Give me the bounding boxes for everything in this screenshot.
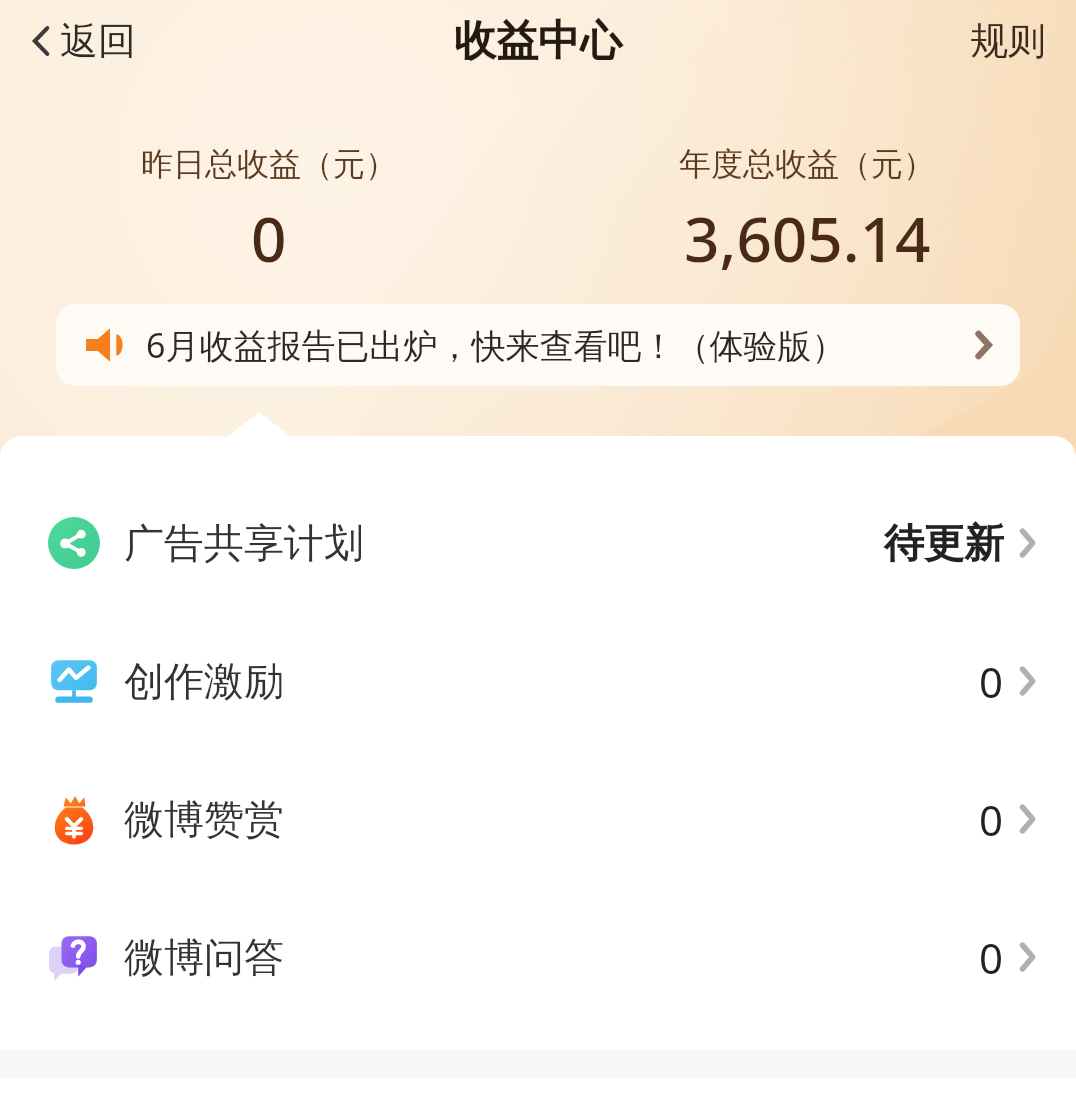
staticText: 3,605.14 xyxy=(684,196,931,280)
staticText: 0 xyxy=(979,653,1004,710)
button[interactable]: 6月收益报告已出炉，快来查看吧！（体验版） xyxy=(56,304,1020,386)
button[interactable]: 广告共享计划 xyxy=(0,474,1076,612)
staticText: 广告共享计划 xyxy=(124,518,364,568)
staticText: 6月收益报告已出炉，快来查看吧！（体验版） xyxy=(146,322,846,368)
staticText: 0 xyxy=(979,929,1004,986)
button[interactable]: 微博赞赏 xyxy=(0,750,1076,888)
staticText: 微博问答 xyxy=(124,932,284,982)
staticText: 规则 xyxy=(970,17,1046,65)
staticText: 微博赞赏 xyxy=(124,794,284,844)
staticText: 待更新 xyxy=(884,518,1004,568)
button[interactable]: 返回 xyxy=(22,11,144,71)
staticText: 昨日总收益（元） xyxy=(141,144,397,184)
staticText: 年度总收益（元） xyxy=(679,144,935,184)
staticText: 创作激励 xyxy=(124,656,284,706)
staticText: 收益中心 xyxy=(454,15,622,68)
staticText: 0 xyxy=(251,196,287,280)
button[interactable]: 微博问答 xyxy=(0,888,1076,1026)
button[interactable]: 创作激励 xyxy=(0,612,1076,750)
staticText: 0 xyxy=(979,791,1004,848)
staticText: 返回 xyxy=(60,17,136,65)
button[interactable]: 规则 xyxy=(962,11,1054,71)
